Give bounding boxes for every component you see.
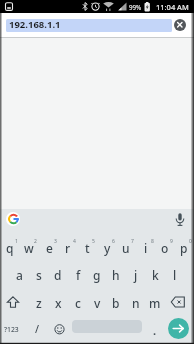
button[interactable]: ?123 [2, 322, 20, 337]
button[interactable]: s [29, 266, 49, 283]
button[interactable]: i [136, 239, 156, 256]
button[interactable]: j [126, 266, 146, 283]
staticText: 1 [15, 238, 18, 245]
staticText: k [152, 267, 159, 283]
button[interactable] [174, 19, 186, 31]
button[interactable] [168, 294, 190, 311]
staticText: o [161, 240, 169, 256]
button[interactable]: c [68, 294, 88, 311]
staticText: 11:04 AM [156, 2, 189, 12]
staticText: 4 [73, 238, 76, 245]
button[interactable]: d [48, 266, 68, 283]
button[interactable]: / [28, 321, 46, 337]
staticText: 7 [131, 238, 134, 245]
button[interactable] [2, 294, 24, 311]
staticText: 3 [54, 238, 57, 245]
button[interactable]: h [106, 266, 126, 283]
button[interactable]: y [97, 239, 117, 256]
staticText: 192.168.1.1 [9, 18, 61, 31]
staticText: x [55, 295, 62, 311]
button[interactable]: v [87, 294, 107, 311]
staticText: r [65, 240, 71, 256]
staticText: v [94, 295, 101, 311]
staticText: c [75, 295, 81, 311]
staticText: 6 [112, 238, 115, 245]
button[interactable]: w [19, 239, 39, 256]
button[interactable] [6, 212, 20, 226]
button[interactable]: q [0, 239, 20, 256]
staticText: y [104, 240, 111, 256]
button[interactable]: o [155, 239, 175, 256]
staticText: 9 [170, 238, 173, 245]
button[interactable]: k [145, 266, 165, 283]
staticText: g [93, 267, 101, 283]
staticText: w [24, 240, 34, 256]
staticText: . [153, 323, 157, 338]
staticText: n [132, 295, 140, 311]
staticText: i [144, 240, 148, 256]
staticText: p [180, 240, 188, 256]
staticText: a [16, 267, 23, 283]
staticText: ?123 [4, 325, 19, 334]
button[interactable]: b [106, 294, 126, 311]
staticText: z [36, 295, 42, 311]
staticText: u [122, 240, 130, 256]
staticText: 99% [129, 3, 142, 11]
staticText: q [6, 240, 14, 256]
button[interactable]: m [145, 294, 165, 311]
button[interactable]: r [58, 239, 78, 256]
button[interactable]: f [68, 266, 88, 283]
staticText: j [134, 267, 138, 283]
staticText: b [112, 295, 120, 311]
button[interactable]: l [165, 266, 185, 283]
staticText: s [36, 267, 42, 283]
button[interactable]: u [116, 239, 136, 256]
button[interactable]: a [9, 266, 29, 283]
button[interactable]: . [147, 322, 163, 338]
staticText: f [76, 267, 81, 283]
staticText: / [35, 322, 40, 336]
button[interactable]: x [48, 294, 68, 311]
button[interactable]: e [39, 239, 59, 256]
staticText: m [149, 295, 161, 311]
button[interactable]: z [29, 294, 49, 311]
staticText: e [46, 240, 53, 256]
button[interactable] [168, 318, 189, 339]
button[interactable]: g [87, 266, 107, 283]
button[interactable]: p [174, 239, 194, 256]
button[interactable] [6, 19, 172, 32]
staticText: 8 [151, 238, 154, 245]
button[interactable]: t [77, 239, 97, 256]
staticText: 5 [92, 238, 95, 245]
button[interactable]: n [126, 294, 146, 311]
staticText: d [54, 267, 62, 283]
staticText: 0 [189, 238, 192, 245]
staticText: t [85, 240, 90, 256]
staticText: 2 [34, 238, 37, 245]
staticText: h [112, 267, 120, 283]
staticText: l [173, 267, 177, 283]
